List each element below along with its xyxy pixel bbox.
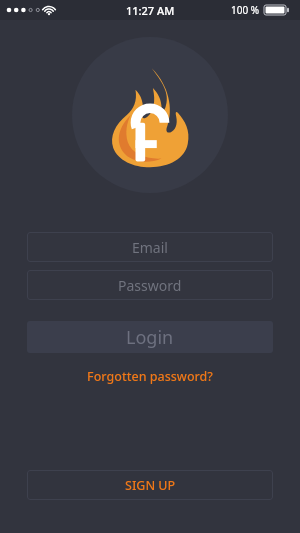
staticText: Login [126, 325, 174, 350]
button[interactable]: Login [27, 321, 273, 353]
button[interactable]: Password [27, 270, 273, 300]
staticText: 11:27 AM [126, 3, 175, 18]
staticText: Password [118, 276, 182, 295]
staticText: Forgotten password? [87, 368, 213, 385]
staticText: 100 % [231, 3, 260, 17]
button[interactable]: Email [27, 232, 273, 262]
button[interactable]: SIGN UP [27, 470, 273, 500]
staticText: SIGN UP [125, 477, 176, 494]
staticText: Email [132, 238, 168, 257]
button[interactable]: Forgotten password? [79, 365, 221, 388]
